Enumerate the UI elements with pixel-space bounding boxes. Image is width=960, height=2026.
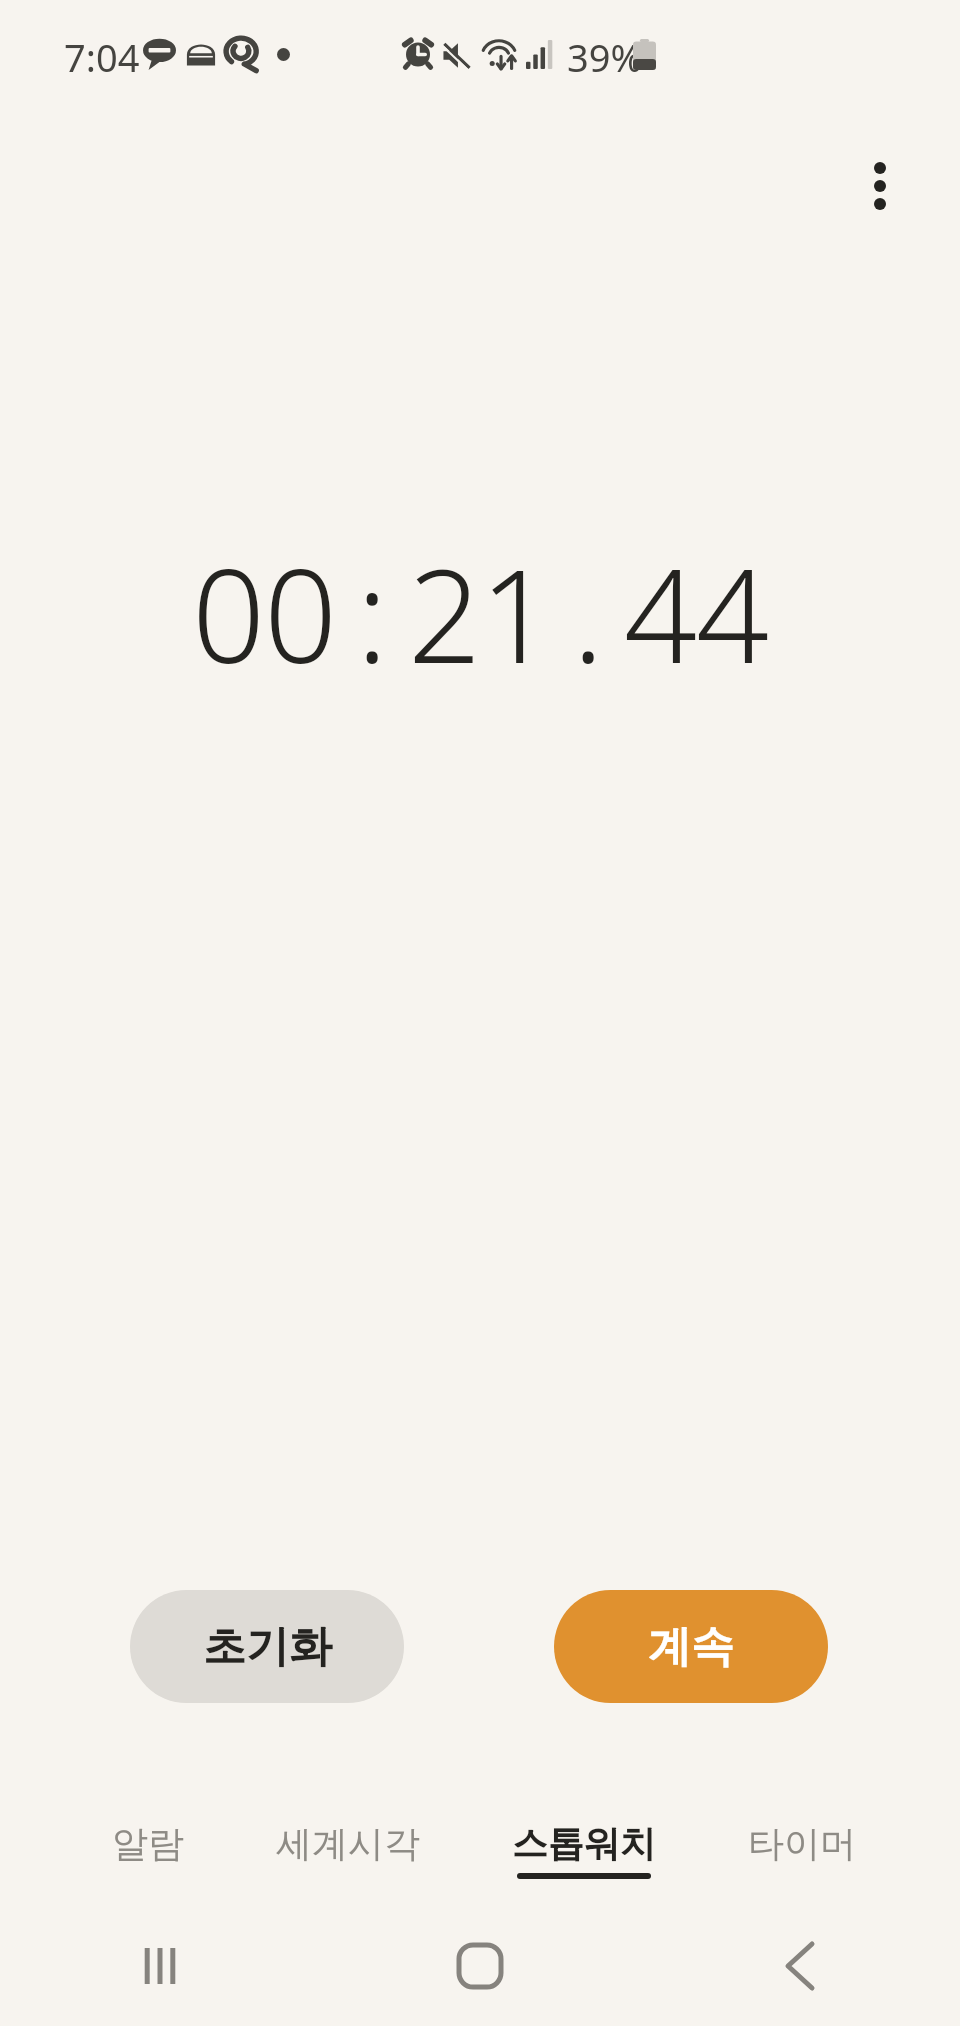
button[interactable]: 계속 — [554, 1590, 828, 1703]
staticText: 7:04 — [64, 31, 140, 83]
staticText: 스톱워치 — [512, 1821, 656, 1866]
button[interactable]: 초기화 — [130, 1590, 404, 1703]
staticText: 0 — [264, 526, 336, 700]
staticText: . — [572, 526, 604, 700]
staticText: 1 — [480, 526, 552, 700]
staticText: 알람 — [112, 1821, 184, 1866]
button[interactable]: 스톱워치 — [502, 1821, 666, 1879]
button[interactable]: Home — [320, 1945, 640, 1987]
button[interactable]: Back — [640, 1944, 960, 1988]
staticText: : — [356, 526, 388, 700]
staticText: 세계시각 — [276, 1821, 420, 1866]
button[interactable]: More options — [837, 143, 923, 229]
button[interactable]: 세계시각 — [266, 1821, 430, 1866]
staticText: 초기화 — [203, 1620, 332, 1674]
staticText: 4 — [696, 526, 768, 700]
button[interactable]: 타이머 — [738, 1821, 866, 1866]
staticText: 4 — [624, 526, 696, 700]
staticText: 타이머 — [748, 1821, 856, 1866]
staticText: 0 — [192, 526, 264, 700]
button[interactable]: Recents — [0, 1948, 320, 1984]
staticText: 계속 — [648, 1620, 734, 1674]
staticText: 2 — [408, 526, 480, 700]
staticText: 39% — [567, 31, 643, 83]
button[interactable]: 알람 — [102, 1821, 194, 1866]
